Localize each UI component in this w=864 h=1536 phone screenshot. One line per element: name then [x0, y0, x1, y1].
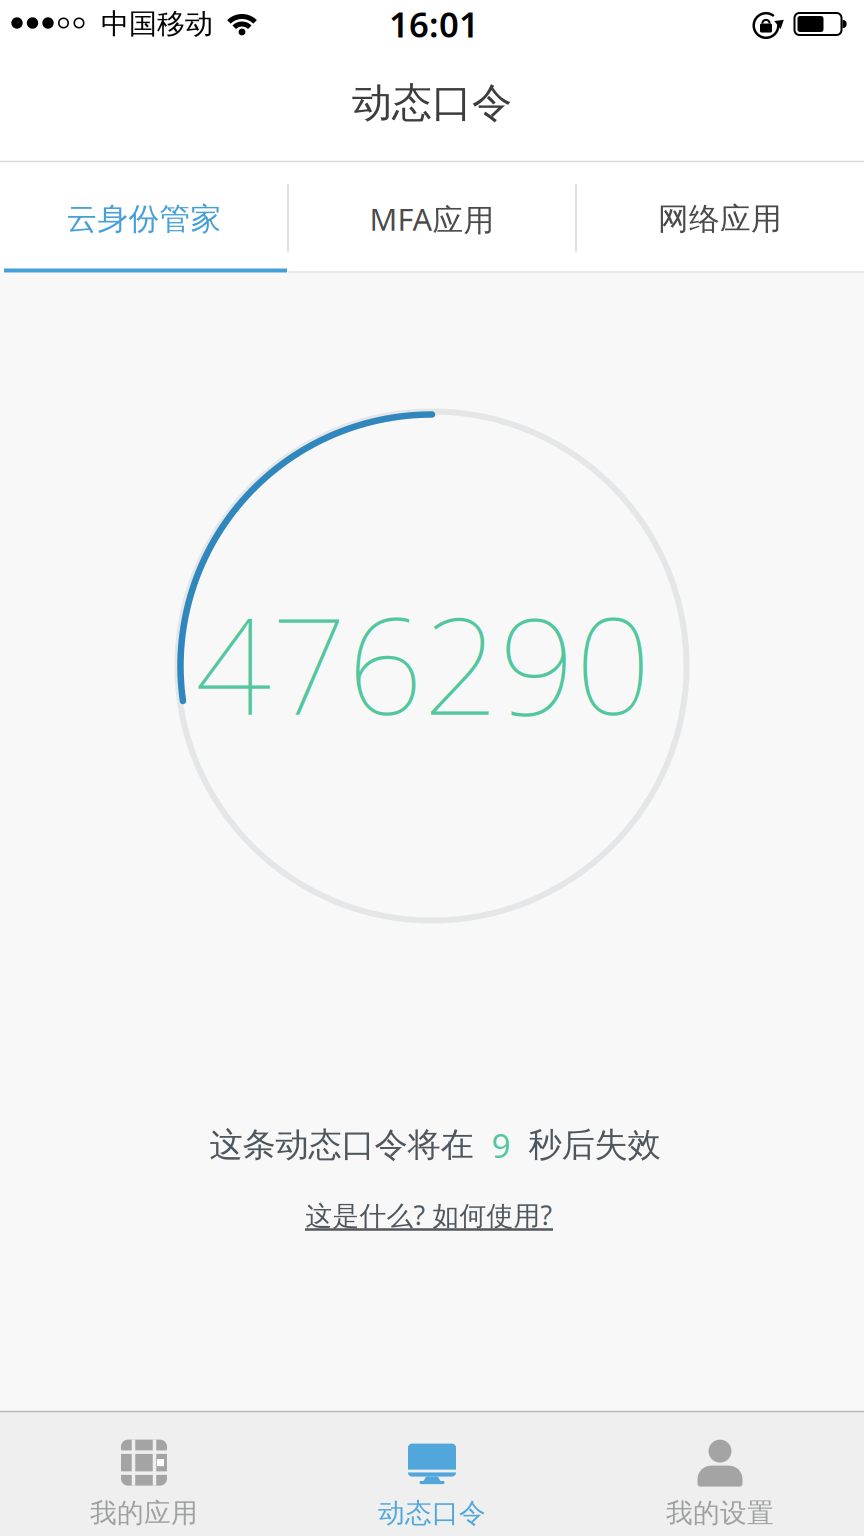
staticText: 动态口令 — [378, 1497, 486, 1529]
staticText: 我的应用 — [90, 1497, 198, 1529]
button[interactable]: 我的应用 — [0, 1423, 288, 1536]
staticText: 动态口令 — [352, 78, 512, 127]
staticText: 我的设置 — [666, 1497, 774, 1529]
staticText: 秒后失效 — [528, 1124, 660, 1165]
staticText: 476290 — [195, 574, 651, 752]
button[interactable]: 网络应用 — [576, 164, 864, 274]
staticText: 云身份管家 — [66, 200, 221, 238]
button[interactable]: 云身份管家 — [0, 164, 288, 274]
staticText: 16:01 — [389, 1, 479, 47]
staticText: 这是什么? 如何使用? — [305, 1197, 552, 1233]
staticText: 这条动态口令将在 — [209, 1124, 473, 1165]
button[interactable]: 这是什么? 如何使用? — [289, 1193, 569, 1237]
button[interactable]: 我的设置 — [576, 1423, 864, 1536]
staticText: 网络应用 — [658, 200, 782, 238]
staticText: 中国移动 — [101, 7, 213, 41]
button[interactable]: MFA应用 — [288, 164, 576, 274]
staticText: 9 — [491, 1123, 510, 1167]
staticText: MFA应用 — [369, 199, 494, 239]
button[interactable]: 动态口令 — [288, 1423, 576, 1536]
